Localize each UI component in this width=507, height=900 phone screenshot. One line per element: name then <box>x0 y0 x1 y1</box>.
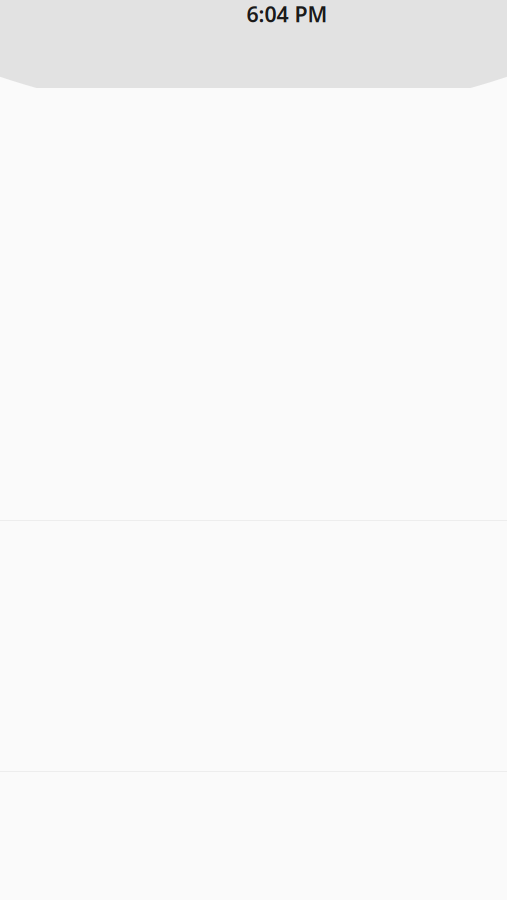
staticText: 6:04 PM <box>246 0 327 28</box>
